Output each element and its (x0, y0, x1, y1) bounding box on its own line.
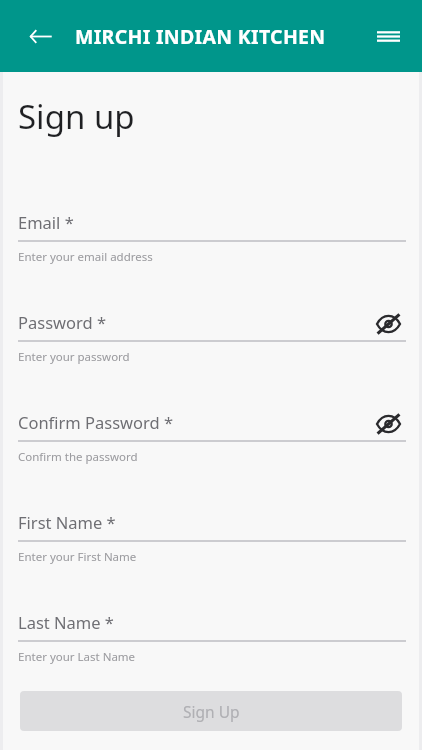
staticText: Confirm the password (18, 449, 138, 465)
button[interactable]: Password * (0, 310, 422, 376)
staticText: First Name * (18, 511, 116, 533)
button[interactable]: Show password (370, 406, 406, 442)
button[interactable]: First Name * (0, 510, 422, 576)
staticText: Sign Up (183, 701, 240, 722)
button[interactable]: Back (22, 18, 58, 54)
staticText: Last Name * (18, 611, 114, 633)
button[interactable]: Menu (366, 14, 410, 58)
button[interactable]: Last Name * (0, 610, 422, 676)
staticText: Enter your password (18, 349, 130, 365)
button[interactable]: Email * (0, 210, 422, 276)
staticText: Confirm Password * (18, 411, 174, 433)
staticText: Password * (18, 311, 107, 333)
staticText: MIRCHI INDIAN KITCHEN (75, 23, 326, 50)
button[interactable]: Confirm Password * (0, 410, 422, 476)
staticText: Enter your Last Name (18, 649, 136, 665)
staticText: Enter your First Name (18, 549, 137, 565)
button[interactable]: Show password (370, 306, 406, 342)
staticText: Sign up (18, 94, 135, 139)
staticText: Enter your email address (18, 249, 153, 265)
button[interactable]: Sign Up (20, 691, 402, 731)
staticText: Email * (18, 211, 74, 233)
